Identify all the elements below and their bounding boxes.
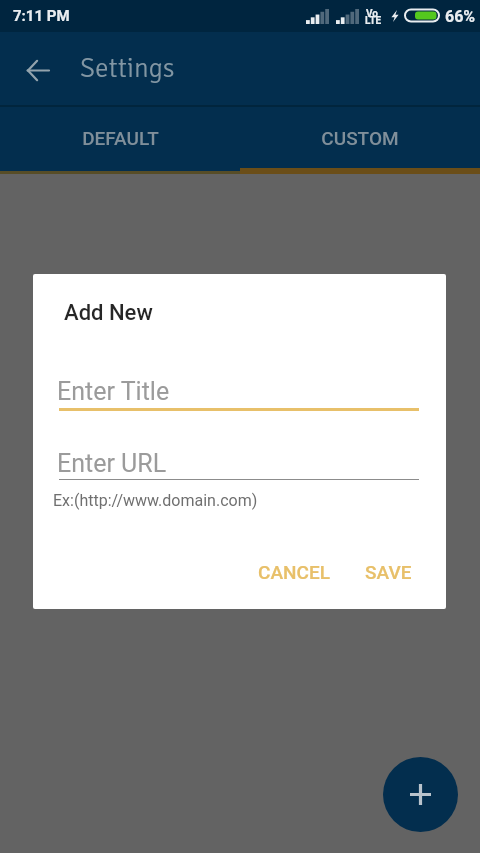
staticText: Enter Title [57,377,170,406]
staticText: Ex:(http://www.domain.com) [53,491,258,510]
button[interactable]: Add [383,757,458,832]
staticText: CANCEL [258,561,330,583]
button[interactable]: Back [16,48,60,92]
button[interactable]: DEFAULT [0,107,240,168]
button[interactable]: SAVE [353,553,424,591]
staticText: Enter URL [57,449,167,478]
staticText: 66% [445,7,476,26]
staticText: Settings [80,52,175,85]
staticText: Vo [366,8,378,20]
button[interactable]: CUSTOM [240,107,480,168]
button[interactable]: CANCEL [246,553,342,591]
staticText: SAVE [365,561,412,583]
staticText: Add New [64,300,153,326]
staticText: CUSTOM [321,127,399,149]
staticText: 7:11 PM [13,7,70,25]
staticText: DEFAULT [82,127,159,149]
staticText: LTE [365,15,382,27]
